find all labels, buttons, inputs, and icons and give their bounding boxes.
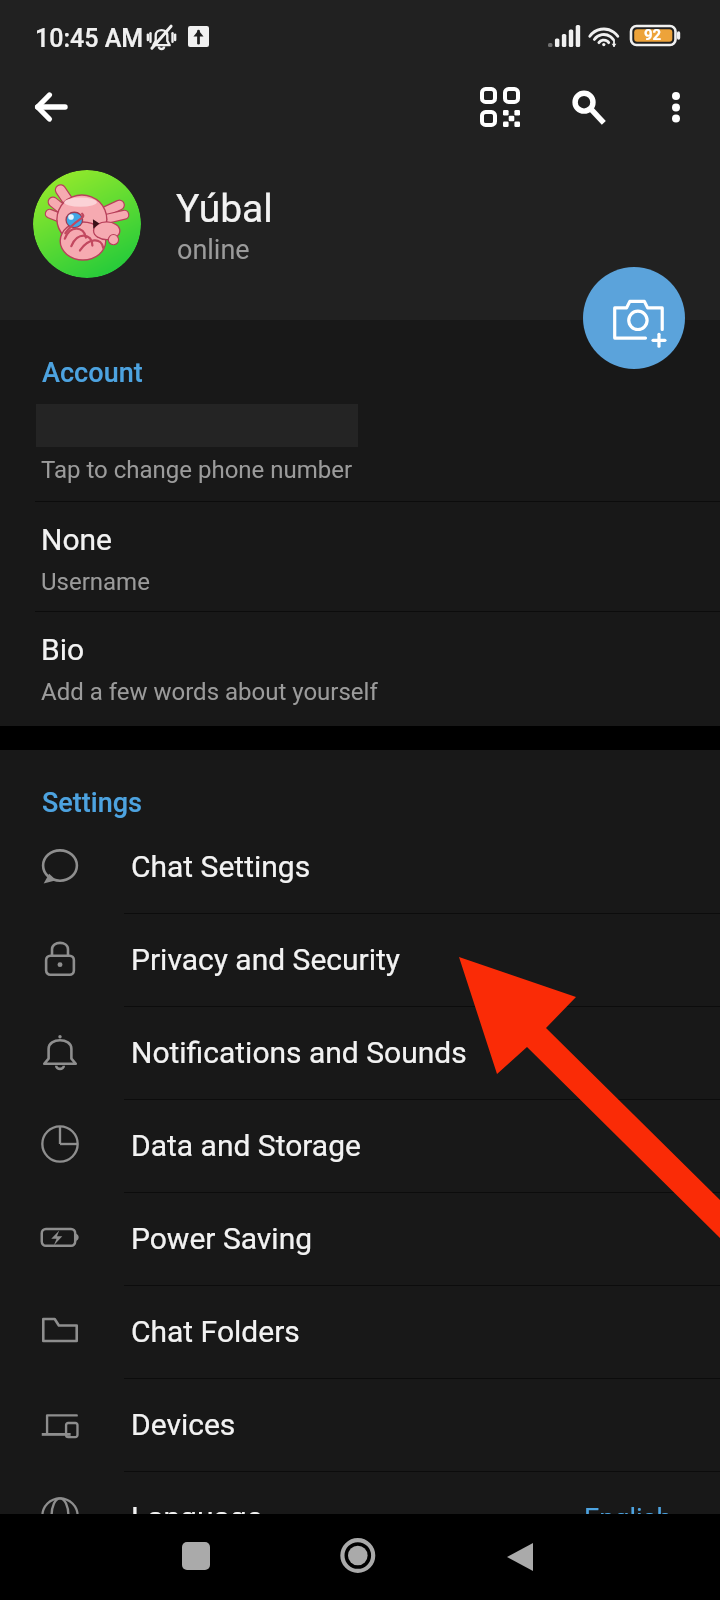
staticText: Chat Settings <box>131 849 311 884</box>
button[interactable]: Data and Storage <box>0 1100 720 1193</box>
button[interactable]: Language <box>0 1472 720 1565</box>
button[interactable]: Back <box>18 76 80 138</box>
staticText: Privacy and Security <box>131 942 401 977</box>
button[interactable]: Chat Folders <box>0 1286 720 1379</box>
button[interactable]: Notifications and Sounds <box>0 1007 720 1100</box>
staticText: Data and Storage <box>131 1128 361 1163</box>
button[interactable]: Bio <box>0 612 720 722</box>
staticText: Bio <box>41 632 85 667</box>
staticText: Add a few words about yourself <box>41 678 378 706</box>
staticText: Account <box>42 357 143 389</box>
staticText: 92 <box>644 26 662 44</box>
staticText: Tap to change phone number <box>41 456 353 484</box>
button[interactable]: QR code <box>470 77 530 137</box>
staticText: None <box>41 522 112 557</box>
button[interactable]: Set profile photo <box>583 267 685 369</box>
button[interactable]: None <box>0 502 720 612</box>
staticText: 10:45 AM <box>35 24 144 53</box>
staticText: Settings <box>42 787 142 819</box>
button[interactable]: Privacy and Security <box>0 914 720 1007</box>
button[interactable]: Devices <box>0 1379 720 1472</box>
staticText: Chat Folders <box>131 1314 300 1349</box>
button[interactable]: Search <box>556 74 616 134</box>
button[interactable]: Yúbal <box>0 160 720 300</box>
staticText: Notifications and Sounds <box>131 1035 467 1070</box>
staticText: Devices <box>131 1407 236 1442</box>
button[interactable]: Back <box>503 1540 537 1574</box>
button[interactable]: Home <box>338 1536 378 1576</box>
button[interactable]: More options <box>646 74 702 130</box>
staticText: Language <box>131 1500 263 1535</box>
staticText: online <box>177 234 250 266</box>
button[interactable]: Tap to change phone number <box>0 392 720 502</box>
staticText: English <box>584 1503 672 1535</box>
staticText: Yúbal <box>176 186 273 232</box>
button[interactable]: Power Saving <box>0 1193 720 1286</box>
staticText: Power Saving <box>131 1221 313 1256</box>
button[interactable]: Chat Settings <box>0 821 720 914</box>
button[interactable]: Recent apps <box>182 1542 210 1570</box>
staticText: Username <box>41 568 150 596</box>
